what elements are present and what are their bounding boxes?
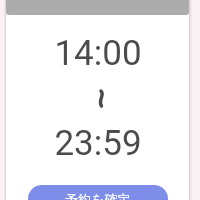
button[interactable]: 予約を確定 (28, 185, 168, 200)
staticText: 14:00 (54, 33, 142, 74)
staticText: 予約を確定 (65, 191, 131, 200)
staticText: 23:59 (54, 123, 142, 164)
